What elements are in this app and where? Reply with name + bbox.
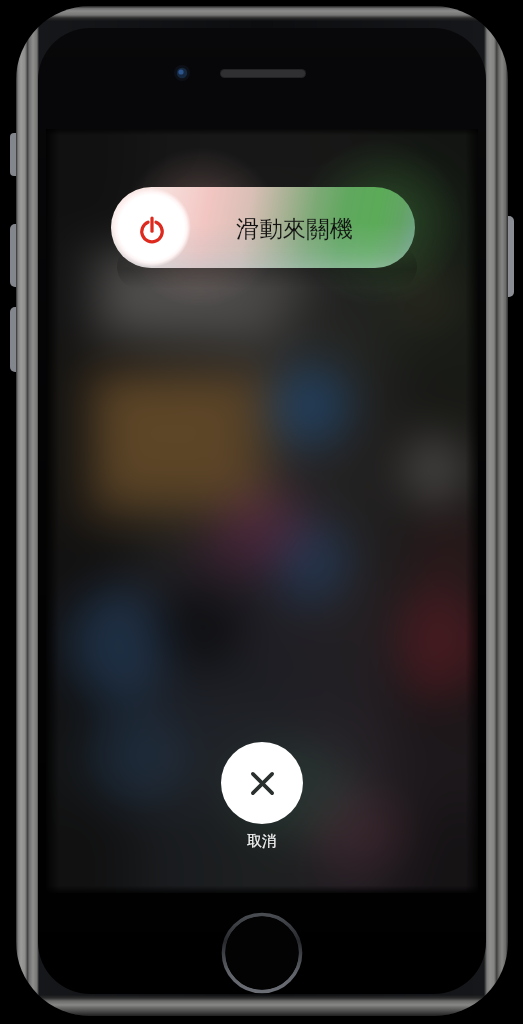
button[interactable]: Power off [111,187,415,268]
staticText: 取消 [221,832,303,851]
staticText: 滑動來關機 [236,214,353,243]
button[interactable]: Power off [112,188,191,267]
button[interactable]: 取消 [221,742,303,851]
